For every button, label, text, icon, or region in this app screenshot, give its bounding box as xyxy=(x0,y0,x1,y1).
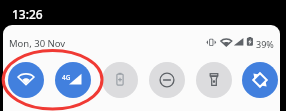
button[interactable]: Battery Saver xyxy=(102,62,138,98)
staticText: 39% xyxy=(256,38,274,50)
button[interactable]: Auto-rotate xyxy=(242,62,278,98)
button[interactable]: Do Not Disturb xyxy=(149,62,185,98)
staticText: Mon, 30 Nov xyxy=(9,37,66,50)
button[interactable]: Wi-Fi xyxy=(8,62,44,98)
button[interactable]: Flashlight xyxy=(196,62,232,98)
staticText: 13:26 xyxy=(12,6,43,22)
button[interactable]: Mobile data xyxy=(55,62,91,98)
staticText: 4G xyxy=(62,73,71,82)
